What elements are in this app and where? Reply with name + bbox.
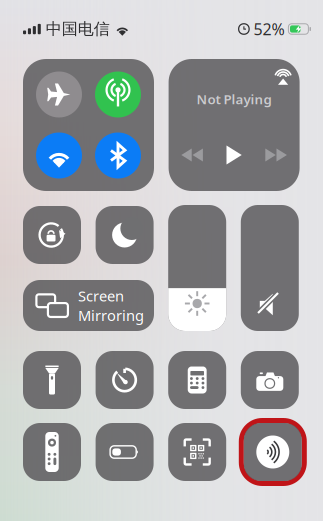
button[interactable]: Next Track bbox=[255, 142, 297, 168]
button[interactable]: Previous Track bbox=[171, 142, 213, 168]
button[interactable]: Wi-Fi bbox=[36, 132, 82, 178]
button[interactable]: Apple TV Remote bbox=[23, 423, 81, 481]
button[interactable]: Brightness bbox=[168, 205, 226, 331]
button[interactable]: AirPlay bbox=[271, 64, 296, 89]
button[interactable]: Play bbox=[213, 142, 255, 168]
staticText: 中国电信 bbox=[46, 19, 110, 39]
staticText: Screen Mirroring bbox=[78, 286, 144, 325]
button[interactable]: NFC Tag Reader bbox=[241, 420, 305, 484]
button[interactable]: Flashlight bbox=[23, 351, 81, 409]
button[interactable]: Timer bbox=[96, 351, 154, 409]
button[interactable]: Volume bbox=[241, 205, 299, 331]
button[interactable]: Airplane Mode bbox=[36, 71, 82, 117]
staticText: 52% bbox=[253, 18, 284, 40]
button[interactable]: Calculator bbox=[168, 351, 226, 409]
staticText: Not Playing bbox=[197, 90, 272, 108]
button[interactable]: Camera bbox=[241, 351, 299, 409]
button[interactable]: Do Not Disturb bbox=[96, 206, 154, 264]
button[interactable]: Code Scanner bbox=[168, 423, 226, 481]
button[interactable]: Bluetooth bbox=[95, 132, 141, 178]
button[interactable]: Cellular Data bbox=[95, 71, 141, 117]
button[interactable]: Low Power Mode bbox=[96, 423, 154, 481]
button[interactable]: Rotation Lock bbox=[23, 206, 81, 264]
button[interactable]: Screen Mirroring bbox=[23, 280, 154, 331]
